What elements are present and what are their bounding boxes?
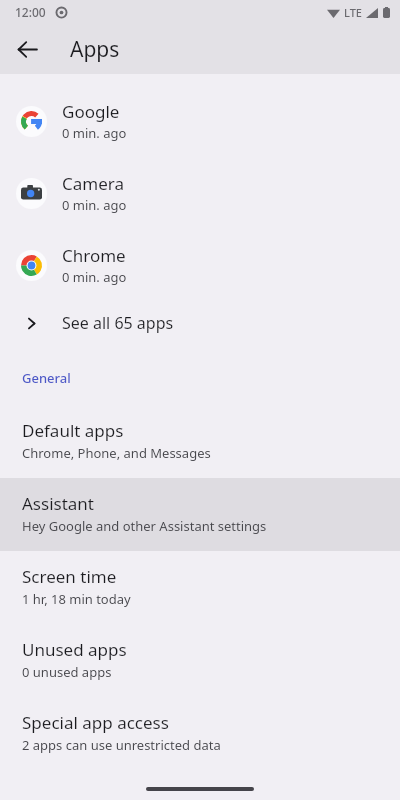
staticText: Chrome, Phone, and Messages: [22, 444, 211, 462]
staticText: Camera: [62, 172, 124, 195]
staticText: LTE: [344, 5, 362, 20]
button[interactable]: Back: [6, 28, 48, 70]
button[interactable]: Unused apps: [0, 624, 400, 697]
staticText: Special app access: [22, 711, 169, 734]
button[interactable]: Camera: [0, 157, 400, 229]
button[interactable]: See all 65 apps: [0, 301, 400, 345]
staticText: Screen time: [22, 565, 117, 588]
button[interactable]: Assistant: [0, 478, 400, 551]
staticText: 1 hr, 18 min today: [22, 590, 131, 608]
staticText: Apps: [70, 35, 120, 64]
staticText: See all 65 apps: [62, 312, 174, 334]
staticText: 0 unused apps: [22, 663, 112, 681]
button[interactable]: Default apps: [0, 405, 400, 478]
staticText: 12:00: [15, 4, 46, 20]
staticText: General: [22, 369, 71, 387]
staticText: Hey Google and other Assistant settings: [22, 517, 267, 535]
staticText: 2 apps can use unrestricted data: [22, 736, 221, 754]
button[interactable]: Special app access: [0, 697, 400, 770]
staticText: Chrome: [62, 244, 126, 267]
staticText: Assistant: [22, 492, 94, 515]
staticText: 0 min. ago: [62, 196, 127, 214]
staticText: 0 min. ago: [62, 124, 127, 142]
button[interactable]: Chrome: [0, 229, 400, 301]
staticText: 0 min. ago: [62, 268, 127, 286]
button[interactable]: Google: [0, 85, 400, 157]
button[interactable]: Screen time: [0, 551, 400, 624]
staticText: Unused apps: [22, 638, 127, 661]
staticText: Google: [62, 100, 120, 123]
staticText: Default apps: [22, 419, 124, 442]
